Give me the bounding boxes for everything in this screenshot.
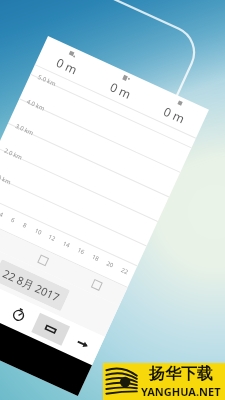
staticText: 2.0 km	[3, 147, 23, 162]
staticText: 10	[33, 227, 43, 237]
staticText: 22 8月 2017	[0, 266, 62, 305]
staticText: 0 m	[161, 103, 188, 127]
staticText: 22	[120, 266, 129, 276]
staticText: 16	[76, 246, 86, 256]
staticText: 5.0 km	[36, 73, 57, 88]
button[interactable]: Tab 2	[0, 298, 38, 331]
button[interactable]: Tab 1	[0, 283, 6, 316]
staticText: 0 m	[108, 78, 134, 102]
button[interactable]: 0 m	[89, 61, 155, 113]
button[interactable]: 0 m	[142, 85, 209, 138]
staticText: 4	[0, 210, 5, 219]
button[interactable]: Tab 4	[63, 327, 102, 360]
staticText: 3.0 km	[14, 122, 35, 137]
staticText: 18	[91, 253, 100, 263]
staticText: 6	[10, 216, 17, 225]
staticText: YANGHUA.NET	[141, 384, 221, 399]
staticText: 8	[21, 221, 28, 230]
staticText: 1.0 km	[0, 171, 12, 186]
staticText: 20	[105, 259, 115, 270]
staticText: 0 m	[54, 54, 81, 78]
staticText: 扬华下载	[149, 364, 213, 384]
staticText: 14	[61, 239, 71, 250]
button[interactable]: Day	[0, 214, 20, 257]
button[interactable]: Month	[65, 263, 127, 306]
button[interactable]: 0 m	[35, 36, 102, 89]
button[interactable]: Week	[12, 239, 74, 281]
button[interactable]: 扬华下载	[103, 363, 225, 400]
button[interactable]: Tab 3	[31, 313, 70, 346]
staticText: 12	[47, 233, 57, 243]
staticText: 4.0 km	[25, 97, 46, 113]
button[interactable]: 22 8月 2017	[0, 266, 62, 305]
